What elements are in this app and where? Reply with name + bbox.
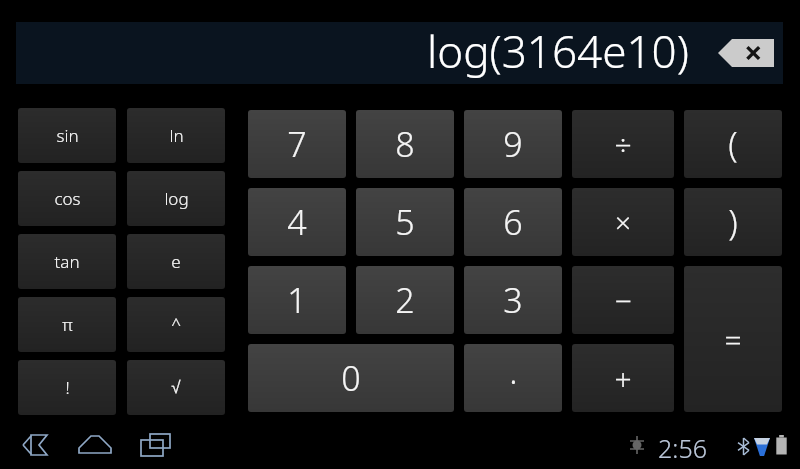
button[interactable]: sin: [18, 108, 116, 163]
staticText: 2:56: [658, 431, 707, 465]
staticText: −: [614, 280, 632, 321]
staticText: 7: [287, 121, 307, 167]
button[interactable]: 3: [464, 266, 562, 334]
staticText: 5: [395, 199, 415, 245]
button[interactable]: 9: [464, 110, 562, 178]
button[interactable]: 5: [356, 188, 454, 256]
staticText: tan: [54, 250, 80, 273]
button[interactable]: Home: [74, 430, 116, 460]
button[interactable]: ln: [127, 108, 225, 163]
button[interactable]: −: [572, 266, 674, 334]
staticText: cos: [54, 187, 81, 210]
button[interactable]: 0: [248, 344, 454, 412]
button[interactable]: ): [684, 188, 782, 256]
button[interactable]: ÷: [572, 110, 674, 178]
staticText: 3: [503, 277, 523, 323]
button[interactable]: 1: [248, 266, 346, 334]
staticText: 4: [287, 199, 307, 245]
staticText: 0: [341, 355, 361, 401]
button[interactable]: !: [18, 360, 116, 415]
staticText: 8: [395, 121, 415, 167]
button[interactable]: √: [127, 360, 225, 415]
staticText: 6: [503, 199, 523, 245]
staticText: ): [728, 199, 738, 245]
staticText: ÷: [614, 124, 632, 165]
button[interactable]: Back: [16, 430, 58, 460]
staticText: 2: [395, 277, 415, 323]
button[interactable]: π: [18, 297, 116, 352]
button[interactable]: 7: [248, 110, 346, 178]
button[interactable]: tan: [18, 234, 116, 289]
staticText: log(3164e10): [427, 21, 689, 81]
button[interactable]: 4: [248, 188, 346, 256]
button[interactable]: 6: [464, 188, 562, 256]
staticText: sin: [56, 124, 79, 147]
button[interactable]: (: [684, 110, 782, 178]
button[interactable]: e: [127, 234, 225, 289]
button[interactable]: ^: [127, 297, 225, 352]
button[interactable]: 8: [356, 110, 454, 178]
staticText: 9: [503, 121, 523, 167]
button[interactable]: ×: [572, 188, 674, 256]
button[interactable]: Recent apps: [134, 430, 176, 460]
staticText: .: [509, 348, 518, 394]
staticText: log: [164, 187, 189, 210]
button[interactable]: 2: [356, 266, 454, 334]
button[interactable]: .: [464, 344, 562, 412]
button[interactable]: +: [572, 344, 674, 412]
staticText: 1: [287, 277, 307, 323]
staticText: π: [62, 313, 73, 336]
button[interactable]: log: [127, 171, 225, 226]
staticText: ln: [169, 124, 184, 147]
staticText: (: [728, 121, 738, 167]
staticText: ^: [171, 313, 181, 336]
button[interactable]: Delete: [718, 39, 774, 67]
staticText: =: [724, 319, 742, 360]
button[interactable]: =: [684, 266, 782, 412]
staticText: e: [171, 250, 181, 273]
staticText: ×: [615, 203, 631, 241]
button[interactable]: cos: [18, 171, 116, 226]
staticText: +: [614, 358, 632, 399]
staticText: √: [171, 378, 181, 397]
staticText: !: [65, 376, 70, 399]
